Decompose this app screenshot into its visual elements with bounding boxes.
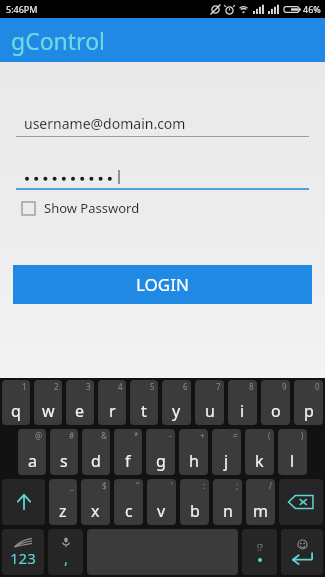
- button[interactable]: ;: [213, 479, 242, 525]
- staticText: z: [59, 500, 67, 522]
- staticText: x: [91, 500, 100, 522]
- button[interactable]: 9: [261, 380, 290, 425]
- button[interactable]: Backspace: [279, 479, 323, 525]
- staticText: _: [70, 480, 74, 491]
- button[interactable]: ): [278, 429, 307, 475]
- staticText: f: [125, 450, 131, 472]
- staticText: 5:46PM: [6, 3, 38, 15]
- button[interactable]: Numbers: [2, 529, 44, 575]
- button[interactable]: Comma: [48, 529, 83, 575]
- staticText: +: [200, 430, 205, 441]
- button[interactable]: $: [81, 479, 110, 525]
- staticText: &: [101, 430, 107, 441]
- staticText: 3: [86, 381, 91, 392]
- button[interactable]: _: [49, 479, 77, 525]
- staticText: /: [269, 480, 272, 491]
- staticText: 0: [315, 381, 320, 392]
- staticText: ): [301, 430, 304, 441]
- staticText: d: [91, 450, 101, 472]
- staticText: ;: [236, 480, 239, 491]
- staticText: h: [189, 450, 199, 472]
- staticText: @: [35, 430, 43, 441]
- staticText: s: [60, 450, 68, 472]
- button[interactable]: =: [212, 429, 241, 475]
- staticText: !?: [257, 542, 263, 553]
- staticText: 2: [54, 381, 59, 392]
- staticText: ,: [64, 548, 69, 568]
- staticText: y: [172, 400, 181, 422]
- staticText: w: [42, 400, 55, 422]
- staticText: m: [253, 500, 268, 522]
- button[interactable]: *: [114, 429, 142, 475]
- staticText: Show Password: [44, 199, 140, 217]
- button[interactable]: 1: [2, 380, 30, 425]
- button[interactable]: &: [82, 429, 110, 475]
- staticText: =: [233, 430, 238, 441]
- staticText: n: [223, 500, 233, 522]
- staticText: j: [224, 450, 229, 472]
- button[interactable]: 2: [34, 380, 62, 425]
- staticText: 8: [249, 381, 254, 392]
- staticText: u: [205, 400, 215, 422]
- button[interactable]: :: [180, 479, 209, 525]
- button[interactable]: 0: [294, 380, 323, 425]
- button[interactable]: Period: [242, 529, 277, 575]
- staticText: a: [28, 450, 37, 472]
- button[interactable]: LOGIN: [13, 265, 312, 304]
- staticText: e: [75, 400, 85, 422]
- button[interactable]: [16, 168, 309, 190]
- button[interactable]: Shift: [2, 479, 45, 525]
- staticText: i: [240, 400, 245, 422]
- button[interactable]: +: [179, 429, 208, 475]
- staticText: -: [169, 430, 172, 441]
- staticText: *: [134, 430, 139, 441]
- button[interactable]: /: [246, 479, 275, 525]
- button[interactable]: Show Password: [22, 199, 140, 217]
- staticText: 4: [118, 381, 123, 392]
- button[interactable]: @: [18, 429, 46, 475]
- staticText: $: [102, 480, 107, 491]
- staticText: 46%: [303, 3, 321, 15]
- staticText: ': [171, 480, 173, 491]
- staticText: p: [304, 400, 314, 422]
- button[interactable]: (: [245, 429, 274, 475]
- button[interactable]: 7: [195, 380, 224, 425]
- staticText: b: [190, 500, 200, 522]
- staticText: q: [11, 400, 21, 422]
- staticText: 1: [22, 381, 27, 392]
- staticText: l: [290, 450, 295, 472]
- button[interactable]: username@domain.com: [16, 114, 309, 137]
- staticText: c: [125, 500, 133, 522]
- staticText: #: [69, 430, 75, 441]
- button[interactable]: -: [146, 429, 175, 475]
- staticText: k: [255, 450, 264, 472]
- staticText: o: [271, 400, 281, 422]
- staticText: 123: [10, 548, 36, 568]
- button[interactable]: 3: [66, 380, 94, 425]
- button[interactable]: ': [147, 479, 176, 525]
- staticText: gControl: [11, 25, 106, 56]
- staticText: LOGIN: [136, 273, 189, 296]
- staticText: v: [157, 500, 166, 522]
- button[interactable]: 5: [130, 380, 158, 425]
- staticText: t: [141, 400, 147, 422]
- staticText: :: [203, 480, 206, 491]
- button[interactable]: 8: [228, 380, 257, 425]
- button[interactable]: 4: [98, 380, 126, 425]
- staticText: 5: [150, 381, 155, 392]
- staticText: 7: [216, 381, 221, 392]
- staticText: 6: [183, 381, 188, 392]
- staticText: username@domain.com: [24, 114, 186, 133]
- staticText: r: [109, 400, 116, 422]
- button[interactable]: ": [114, 479, 143, 525]
- staticText: ": [136, 480, 140, 491]
- button[interactable]: Enter: [281, 529, 323, 575]
- staticText: g: [156, 450, 166, 472]
- button[interactable]: #: [50, 429, 78, 475]
- staticText: (: [268, 430, 271, 441]
- staticText: 9: [282, 381, 287, 392]
- button[interactable]: 6: [162, 380, 191, 425]
